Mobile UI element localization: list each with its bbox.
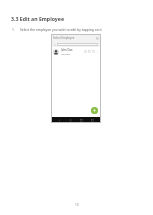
staticText: 3.3 Edit an Employee: [11, 15, 64, 22]
button[interactable]: Menu: [90, 118, 95, 123]
staticText: 10: [75, 203, 79, 207]
staticText: Select the employee you wish to edit by …: [20, 27, 103, 31]
button[interactable]: Recent apps: [79, 118, 84, 123]
button[interactable]: More options: [96, 50, 99, 53]
button[interactable]: Back: [57, 118, 62, 123]
button[interactable]: John Doe: [51, 47, 101, 56]
button[interactable]: Select Employee: [51, 34, 101, 41]
staticText: 1.: [12, 27, 15, 31]
staticText: John Doe: [61, 48, 73, 52]
button[interactable]: Search: [53, 43, 56, 46]
button[interactable]: Message: [88, 50, 91, 53]
button[interactable]: Add: [91, 107, 98, 114]
staticText: Manager: [61, 53, 71, 56]
button[interactable]: Home: [68, 118, 73, 123]
button[interactable]: Add employee: [95, 36, 99, 40]
button[interactable]: [57, 43, 98, 46]
staticText: Select Employee: [53, 36, 75, 40]
button[interactable]: Email: [92, 50, 95, 53]
